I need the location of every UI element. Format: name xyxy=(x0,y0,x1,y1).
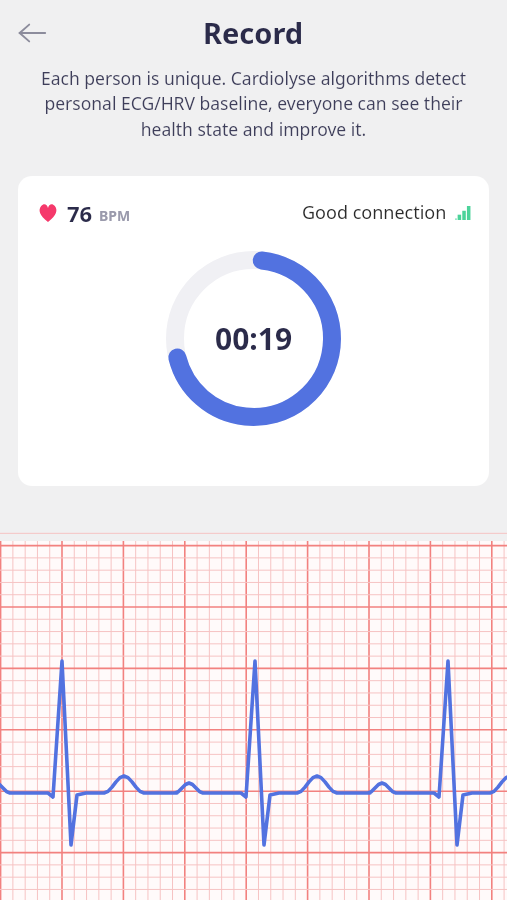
staticText: 76 xyxy=(67,198,93,228)
staticText: Each person is unique. Cardiolyse algori… xyxy=(30,66,477,142)
staticText: Record xyxy=(203,13,304,52)
staticText: Good connection xyxy=(302,200,447,225)
button[interactable]: Back xyxy=(10,11,54,55)
button[interactable]: Good connection xyxy=(302,200,471,225)
staticText: BPM xyxy=(99,206,131,225)
staticText: 00:19 xyxy=(215,318,293,359)
button[interactable]: 76 xyxy=(18,176,489,486)
